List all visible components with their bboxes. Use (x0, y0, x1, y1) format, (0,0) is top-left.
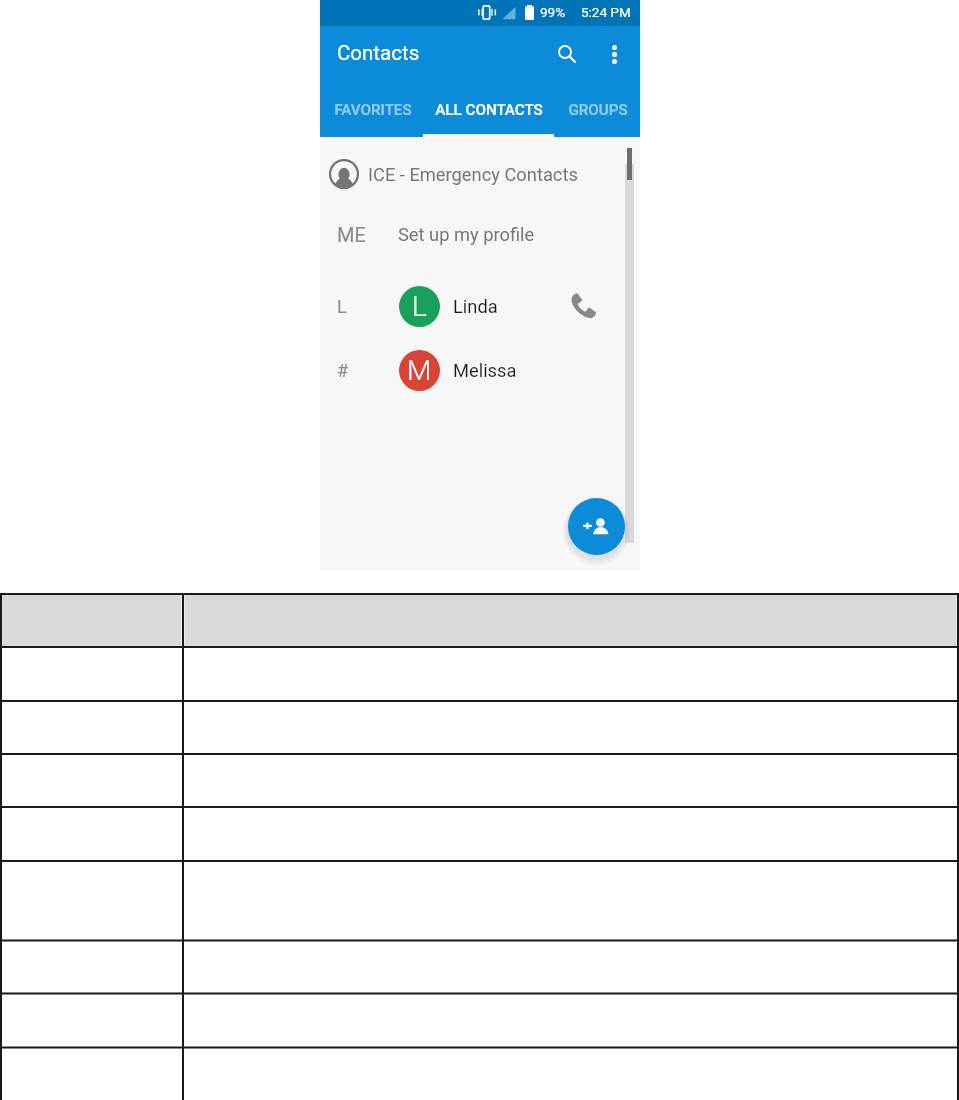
button[interactable]: FAVORITES (321, 84, 424, 135)
staticText: Linda (453, 296, 498, 317)
button[interactable]: # (320, 339, 640, 401)
button[interactable]: L (320, 275, 640, 337)
button[interactable]: Search (545, 32, 589, 76)
button[interactable]: Contacts (337, 38, 420, 68)
staticText: ICE - Emergency Contacts (368, 164, 578, 185)
button[interactable]: GROUPS (555, 84, 641, 135)
staticText: FAVORITES (334, 101, 412, 119)
button[interactable]: ALL CONTACTS (423, 84, 554, 135)
staticText: L (337, 296, 347, 317)
staticText: Set up my profile (398, 224, 535, 245)
staticText: ALL CONTACTS (435, 101, 543, 119)
staticText: ME (337, 223, 366, 246)
staticText: 99% (540, 4, 566, 20)
button[interactable]: Add contact (568, 498, 625, 555)
staticText: GROUPS (568, 101, 628, 119)
staticText: # (337, 360, 349, 381)
button[interactable]: More options (592, 32, 636, 76)
staticText: Contacts (337, 41, 420, 65)
button[interactable]: ICE - Emergency Contacts (320, 143, 640, 205)
staticText: L (412, 290, 427, 323)
button[interactable]: ME (320, 203, 640, 265)
staticText: 5:24 PM (581, 4, 631, 20)
staticText: M (407, 354, 432, 387)
staticText: Melissa (453, 360, 517, 381)
button[interactable]: Call Linda (560, 284, 604, 328)
